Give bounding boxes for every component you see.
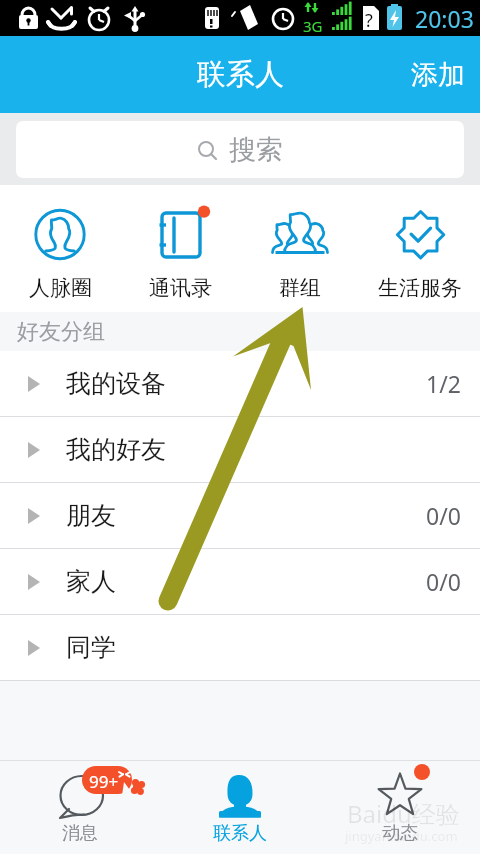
staticText: 家人 xyxy=(66,566,116,597)
staticText: 消息 xyxy=(62,822,98,845)
staticText: 联系人 xyxy=(213,822,267,845)
button[interactable]: 朋友 xyxy=(0,483,480,548)
button[interactable]: Messages xyxy=(0,761,160,854)
staticText: 0/0 xyxy=(426,566,461,597)
button[interactable]: 我的好友 xyxy=(0,417,480,482)
button[interactable]: Contacts xyxy=(160,761,320,854)
staticText: 同学 xyxy=(66,632,116,663)
staticText: Baidu经验 xyxy=(347,797,460,830)
button[interactable]: 家人 xyxy=(0,549,480,614)
staticText: 1/2 xyxy=(426,368,461,399)
button[interactable]: 人脉圈 xyxy=(0,185,120,312)
staticText: 生活服务 xyxy=(378,275,462,301)
button[interactable]: 群组 xyxy=(240,185,360,312)
staticText: 99+ xyxy=(89,770,119,793)
staticText: 朋友 xyxy=(66,500,116,531)
staticText: jingyan.baidu.com xyxy=(345,827,458,845)
button[interactable]: 添加 xyxy=(396,36,480,113)
button[interactable]: 我的设备 xyxy=(0,351,480,416)
staticText: 动态 xyxy=(382,822,418,845)
staticText: 20:03 xyxy=(415,3,474,34)
staticText: 0/0 xyxy=(426,500,461,531)
staticText: 我的好友 xyxy=(66,434,166,465)
staticText: 添加 xyxy=(411,58,465,92)
staticText: 通讯录 xyxy=(149,275,212,301)
staticText: 人脉圈 xyxy=(29,275,92,301)
staticText: 3G xyxy=(303,16,323,36)
button[interactable]: Feed xyxy=(320,761,480,854)
button[interactable]: 生活服务 xyxy=(360,185,480,312)
button[interactable]: 搜索 xyxy=(16,121,464,178)
staticText: 联系人 xyxy=(197,56,284,93)
staticText: 群组 xyxy=(279,275,321,301)
button[interactable]: 同学 xyxy=(0,615,480,680)
staticText: 我的设备 xyxy=(66,368,166,399)
staticText: 搜索 xyxy=(229,133,283,167)
staticText: ? xyxy=(365,8,373,33)
staticText: 好友分组 xyxy=(17,318,105,346)
button[interactable]: 通讯录 xyxy=(120,185,240,312)
